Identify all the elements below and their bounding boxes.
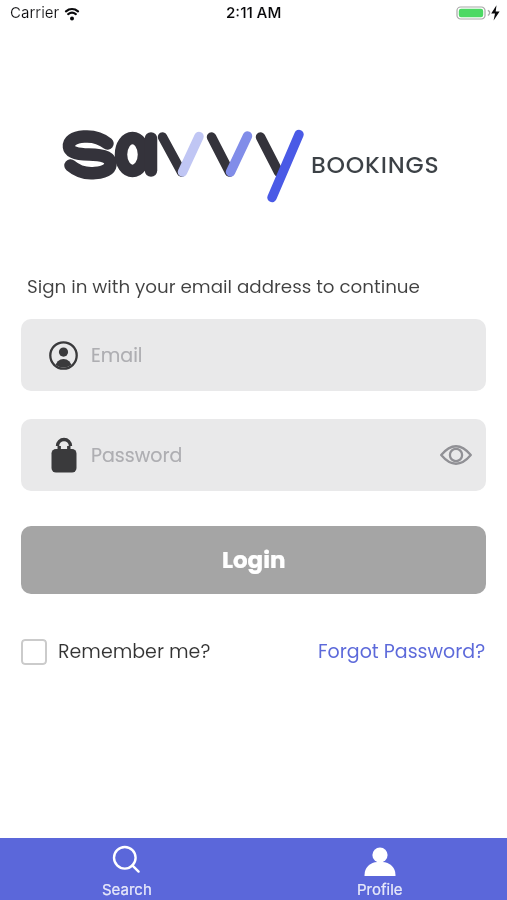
button[interactable]: Search: [0, 838, 253, 900]
staticText: Search: [102, 880, 152, 898]
staticText: BOOKINGS: [311, 148, 440, 181]
button[interactable]: Password: [21, 419, 486, 491]
staticText: Email: [91, 342, 143, 369]
staticText: 2:11 AM: [226, 3, 282, 21]
staticText: Password: [91, 442, 183, 469]
button[interactable]: Login: [21, 526, 486, 594]
staticText: Remember me?: [58, 638, 211, 665]
button[interactable]: Forgot Password?: [318, 638, 486, 665]
staticText: Profile: [357, 880, 403, 898]
button[interactable]: Profile: [253, 838, 507, 900]
button[interactable]: Email: [21, 319, 486, 391]
staticText: Login: [222, 544, 286, 576]
staticText: Sign in with your email address to conti…: [27, 274, 420, 300]
button[interactable]: [431, 430, 481, 480]
button[interactable]: [21, 639, 47, 665]
staticText: Carrier: [10, 3, 60, 21]
